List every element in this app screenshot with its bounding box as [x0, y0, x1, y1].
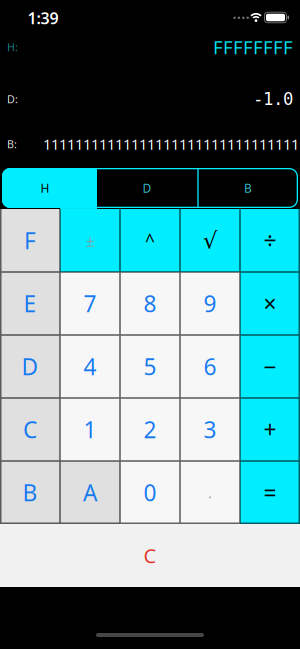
staticText: 1:39	[27, 7, 58, 29]
staticText: 0	[143, 477, 156, 507]
button[interactable]: ±	[60, 209, 120, 272]
staticText: C	[143, 542, 156, 569]
button[interactable]: ×	[240, 272, 300, 335]
staticText: F	[24, 225, 36, 255]
staticText: 11111111111111111111111111111111	[43, 134, 299, 154]
button[interactable]: 6	[180, 335, 240, 398]
staticText: 2	[143, 414, 156, 444]
staticText: B:	[7, 137, 17, 151]
button[interactable]: 8	[120, 272, 180, 335]
button[interactable]: 3	[180, 398, 240, 461]
staticText: 5	[143, 351, 156, 381]
button[interactable]: 7	[60, 272, 120, 335]
button[interactable]: F	[0, 209, 60, 272]
button[interactable]: ÷	[240, 209, 300, 272]
button[interactable]: H	[2, 168, 97, 208]
button[interactable]: 9	[180, 272, 240, 335]
staticText: C	[23, 414, 37, 444]
button[interactable]: 5	[120, 335, 180, 398]
staticText: 8	[143, 288, 156, 318]
staticText: D	[142, 180, 151, 196]
button[interactable]: =	[240, 461, 300, 524]
button[interactable]: ^	[120, 209, 180, 272]
staticText: -1.0	[253, 89, 293, 109]
staticText: −	[263, 351, 276, 381]
staticText: √	[203, 228, 217, 253]
button[interactable]: C	[0, 524, 300, 587]
button[interactable]: C	[0, 398, 60, 461]
staticText: FFFFFFFF	[213, 35, 293, 59]
button[interactable]: B	[0, 461, 60, 524]
staticText: H	[40, 180, 49, 196]
staticText: D:	[7, 92, 18, 106]
staticText: A	[83, 477, 97, 507]
staticText: ×	[263, 288, 276, 318]
button[interactable]: √	[180, 209, 240, 272]
button[interactable]: 1	[60, 398, 120, 461]
staticText: D	[21, 351, 38, 381]
staticText: ^	[145, 229, 155, 252]
staticText: 4	[83, 351, 96, 381]
button[interactable]: .	[180, 461, 240, 524]
staticText: E	[23, 288, 36, 318]
staticText: ÷	[263, 225, 276, 255]
staticText: =	[263, 477, 276, 507]
button[interactable]: 4	[60, 335, 120, 398]
staticText: H:	[7, 40, 18, 54]
staticText: 3	[203, 414, 216, 444]
button[interactable]: 2	[120, 398, 180, 461]
button[interactable]: D	[97, 168, 197, 208]
staticText: B	[22, 477, 37, 507]
staticText: +	[263, 414, 276, 444]
staticText: 6	[203, 351, 216, 381]
button[interactable]: +	[240, 398, 300, 461]
button[interactable]: D	[0, 335, 60, 398]
button[interactable]: B	[199, 168, 297, 208]
staticText: ±	[85, 230, 94, 251]
button[interactable]: −	[240, 335, 300, 398]
staticText: 1	[83, 414, 96, 444]
staticText: 7	[83, 288, 96, 318]
button[interactable]: 0	[120, 461, 180, 524]
staticText: .	[208, 483, 212, 502]
staticText: B	[244, 180, 252, 196]
button[interactable]: A	[60, 461, 120, 524]
button[interactable]: E	[0, 272, 60, 335]
staticText: 9	[203, 288, 216, 318]
